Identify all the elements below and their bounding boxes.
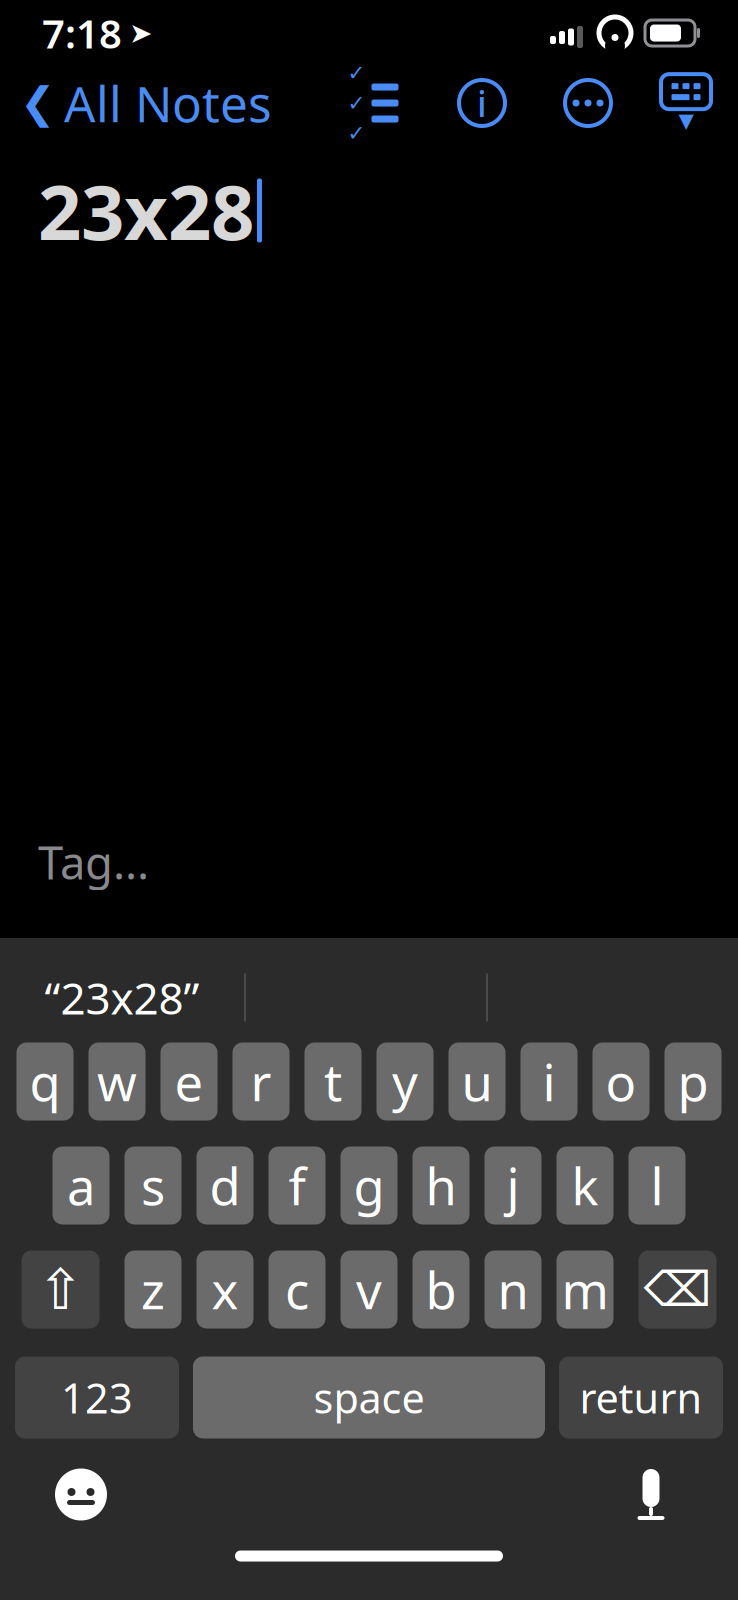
staticText: f: [288, 1152, 305, 1219]
button[interactable]: Shift: [21, 1250, 99, 1328]
button[interactable]: h: [412, 1146, 469, 1224]
staticText: q: [29, 1048, 60, 1115]
button[interactable]: n: [484, 1250, 541, 1328]
button[interactable]: Delete: [638, 1250, 716, 1328]
staticText: ❮: [20, 79, 56, 127]
button[interactable]: return: [559, 1356, 723, 1438]
staticText: ▼: [678, 109, 693, 132]
button[interactable]: q: [16, 1042, 73, 1120]
button[interactable]: Info: [452, 73, 512, 133]
staticText: g: [353, 1152, 384, 1219]
button[interactable]: o: [592, 1042, 649, 1120]
staticText: ⇧: [37, 1258, 84, 1321]
staticText: d: [209, 1152, 240, 1219]
button[interactable]: Hide Keyboard: [656, 73, 716, 133]
staticText: w: [97, 1048, 137, 1115]
staticText: t: [324, 1048, 342, 1115]
staticText: u: [461, 1048, 492, 1115]
staticText: p: [677, 1048, 708, 1115]
staticText: v: [356, 1256, 382, 1323]
staticText: h: [425, 1152, 456, 1219]
button[interactable]: m: [556, 1250, 613, 1328]
staticText: 23x28: [38, 160, 254, 261]
button[interactable]: a: [52, 1146, 109, 1224]
staticText: 123: [61, 1370, 133, 1425]
staticText: i: [542, 1048, 555, 1115]
staticText: z: [141, 1256, 165, 1323]
staticText: ✓: [347, 121, 365, 145]
button[interactable]: space: [193, 1356, 545, 1438]
staticText: ➤: [129, 17, 152, 49]
button[interactable]: k: [556, 1146, 613, 1224]
staticText: return: [579, 1370, 702, 1425]
staticText: b: [425, 1256, 456, 1323]
button[interactable]: p: [664, 1042, 721, 1120]
button[interactable]: l: [628, 1146, 685, 1224]
button[interactable]: d: [196, 1146, 253, 1224]
staticText: ⌫: [643, 1262, 711, 1317]
staticText: l: [650, 1152, 663, 1219]
button[interactable]: x: [196, 1250, 253, 1328]
staticText: 7:18: [42, 6, 122, 59]
button[interactable]: i: [520, 1042, 577, 1120]
staticText: x: [211, 1256, 238, 1323]
button[interactable]: u: [448, 1042, 505, 1120]
staticText: m: [561, 1256, 608, 1323]
staticText: ✓: [347, 61, 365, 85]
button[interactable]: More: [558, 73, 618, 133]
button[interactable]: Dictation: [618, 1461, 738, 1527]
button[interactable]: r: [232, 1042, 289, 1120]
button[interactable]: e: [160, 1042, 217, 1120]
staticText: r: [250, 1048, 271, 1115]
button[interactable]: ❮: [0, 58, 272, 148]
staticText: k: [571, 1152, 598, 1219]
button[interactable]: s: [124, 1146, 181, 1224]
button[interactable]: g: [340, 1146, 397, 1224]
button[interactable]: c: [268, 1250, 325, 1328]
button[interactable]: z: [124, 1250, 181, 1328]
button[interactable]: w: [88, 1042, 145, 1120]
staticText: o: [605, 1048, 636, 1115]
staticText: Tag...: [38, 832, 149, 892]
staticText: c: [285, 1256, 309, 1323]
button[interactable]: Checklist: [340, 73, 406, 133]
button[interactable]: “23x28”: [0, 958, 244, 1036]
staticText: ✓: [347, 91, 365, 115]
staticText: n: [497, 1256, 528, 1323]
button[interactable]: v: [340, 1250, 397, 1328]
button[interactable]: j: [484, 1146, 541, 1224]
staticText: e: [174, 1048, 203, 1115]
button[interactable]: f: [268, 1146, 325, 1224]
staticText: j: [506, 1152, 519, 1219]
button[interactable]: t: [304, 1042, 361, 1120]
staticText: s: [141, 1152, 165, 1219]
staticText: a: [67, 1152, 95, 1219]
staticText: i: [477, 79, 487, 127]
button[interactable]: b: [412, 1250, 469, 1328]
button[interactable]: Emoji: [0, 1461, 114, 1527]
button[interactable]: y: [376, 1042, 433, 1120]
staticText: y: [392, 1048, 418, 1115]
button[interactable]: 123: [15, 1356, 179, 1438]
staticText: All Notes: [64, 70, 272, 136]
staticText: space: [313, 1370, 424, 1425]
staticText: “23x28”: [44, 968, 199, 1027]
